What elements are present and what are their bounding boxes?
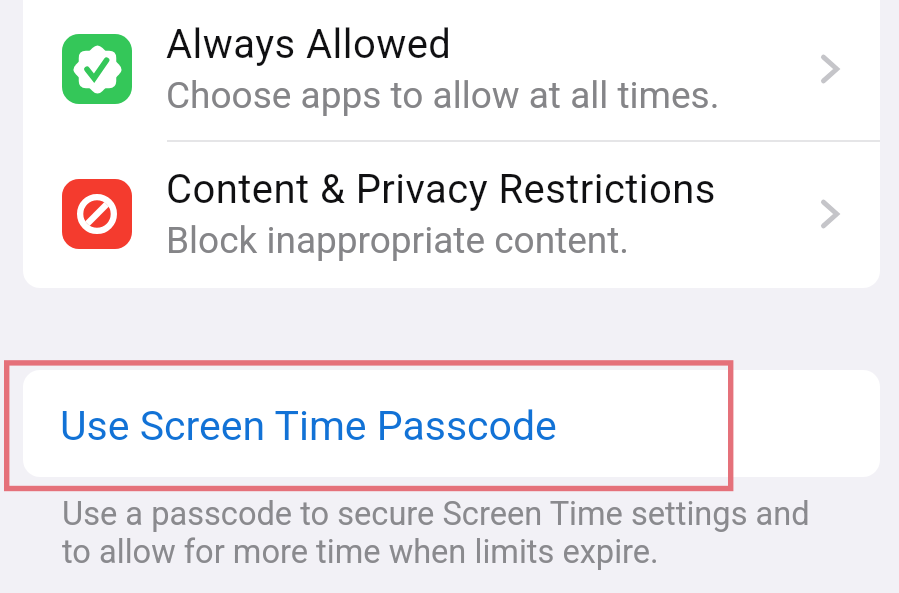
staticText: Always Allowed: [166, 21, 452, 68]
staticText: Use Screen Time Passcode: [60, 402, 557, 450]
other: Open Content & Privacy Restrictions: [793, 184, 880, 244]
other: Open Always Allowed: [793, 39, 880, 99]
staticText: Content & Privacy Restrictions: [166, 166, 716, 213]
button[interactable]: Use Screen Time Passcode: [23, 370, 880, 477]
button[interactable]: Always Allowed: [23, 0, 880, 140]
staticText: Block inappropriate content.: [166, 219, 630, 262]
staticText: Choose apps to allow at all times.: [166, 74, 720, 117]
button[interactable]: Content & Privacy Restrictions: [23, 141, 880, 288]
staticText: Use a passcode to secure Screen Time set…: [62, 495, 810, 571]
